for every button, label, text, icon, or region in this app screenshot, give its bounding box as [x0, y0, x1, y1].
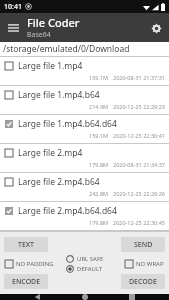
staticText: 242.8M	[89, 190, 109, 197]
staticText: 214.9M	[89, 103, 109, 110]
staticText: 10:41	[4, 2, 22, 12]
button[interactable]: NO WRAP	[125, 260, 164, 268]
staticText: 2020-12-25 22:30:45	[113, 219, 165, 226]
button[interactable]: DEFAULT	[66, 265, 103, 273]
staticText: TEXT	[18, 240, 35, 250]
button[interactable]: Large file 2.mp4.b64	[0, 173, 169, 202]
staticText: Large file 2.mp4.b64.d64	[18, 205, 117, 217]
staticText: Large file 1.mp4.b64	[18, 89, 100, 101]
staticText: DEFAULT	[77, 265, 103, 273]
staticText: 2020-08-31 21:34:37	[113, 161, 165, 168]
button[interactable]: NO PADDING	[5, 260, 54, 268]
button[interactable]: Large file 1.mp4	[0, 57, 169, 86]
staticText: 2020-08-31 21:37:31	[113, 74, 165, 81]
staticText: SEND	[134, 240, 153, 250]
button[interactable]: /storage/emulated/0/Download	[0, 42, 169, 56]
staticText: 2020-12-25 22:30:41	[113, 132, 165, 139]
staticText: 159.1M	[89, 74, 109, 81]
button[interactable]: Open navigation drawer	[4, 19, 22, 37]
button[interactable]: Settings	[147, 19, 165, 37]
staticText: 179.8M	[89, 219, 109, 226]
staticText: DECODE	[129, 277, 157, 287]
button[interactable]: DECODE	[121, 274, 165, 289]
button[interactable]: Home	[75, 294, 95, 300]
button[interactable]: URL SAFE	[66, 255, 104, 263]
staticText: Large file 1.mp4.b64.d64	[18, 118, 117, 130]
staticText: 179.8M	[89, 161, 109, 168]
button[interactable]: TEXT	[4, 237, 48, 252]
staticText: ENCODE	[12, 277, 41, 287]
staticText: NO PADDING	[16, 260, 54, 268]
staticText: 2020-12-25 22:29:23	[113, 103, 165, 110]
staticText: 2020-12-25 22:29:26	[113, 190, 165, 197]
staticText: 159.1M	[89, 132, 109, 139]
staticText: URL SAFE	[77, 255, 104, 263]
button[interactable]: Large file 2.mp4	[0, 144, 169, 173]
button[interactable]: Large file 2.mp4.b64.d64	[0, 202, 169, 231]
button[interactable]: Large file 1.mp4.b64	[0, 86, 169, 115]
staticText: Large file 2.mp4.b64	[18, 176, 100, 188]
button[interactable]: Back	[27, 294, 47, 300]
button[interactable]: ENCODE	[4, 274, 48, 289]
staticText: Base64	[27, 30, 51, 40]
staticText: Large file 1.mp4	[18, 60, 83, 72]
staticText: /storage/emulated/0/Download	[3, 43, 130, 55]
staticText: Large file 2.mp4	[18, 147, 83, 159]
button[interactable]: SEND	[121, 237, 165, 252]
button[interactable]: Large file 1.mp4.b64.d64	[0, 115, 169, 144]
staticText: File Coder	[27, 15, 80, 30]
staticText: NO WRAP	[136, 260, 164, 268]
button[interactable]: Recent apps	[122, 294, 142, 300]
